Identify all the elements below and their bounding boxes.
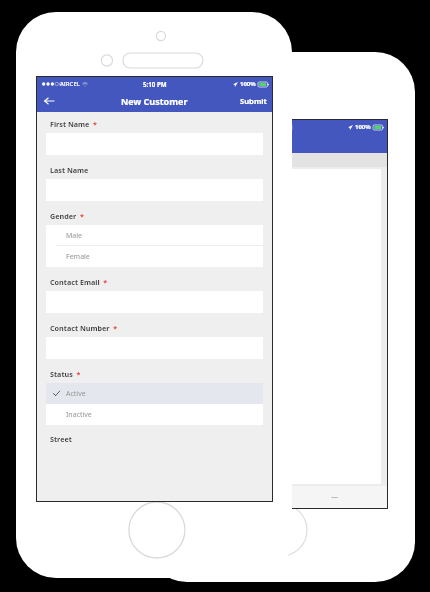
- staticText: 100%: [240, 80, 256, 88]
- staticText: 5:10 PM: [269, 123, 293, 131]
- staticText: Female: [66, 252, 90, 262]
- staticText: 5:10 PM: [143, 80, 167, 88]
- staticText: Street: [50, 434, 72, 444]
- button[interactable]: Female: [46, 246, 263, 267]
- staticText: Inactive: [66, 410, 92, 420]
- button[interactable]: —: [281, 486, 387, 508]
- staticText: First Name *: [50, 119, 97, 129]
- staticText: 100%: [355, 123, 371, 131]
- staticText: Submit: [240, 96, 267, 106]
- button[interactable]: Submit: [235, 92, 272, 110]
- staticText: Delete: [216, 492, 239, 502]
- staticText: Contact Email *: [50, 277, 108, 287]
- staticText: —: [331, 492, 338, 502]
- staticText: New Customer: [121, 95, 188, 107]
- staticText: Active: [66, 389, 86, 399]
- button[interactable]: Inactive: [46, 404, 263, 425]
- staticText: California: [189, 379, 221, 389]
- staticText: Gender *: [50, 211, 84, 221]
- button[interactable]: Male: [46, 225, 263, 246]
- button[interactable]: Back: [41, 93, 57, 109]
- staticText: Pleasanton: [189, 355, 226, 365]
- staticText: Male: [66, 231, 83, 241]
- staticText: AIRCEL: [60, 80, 80, 88]
- button[interactable]: Delete: [175, 486, 280, 508]
- staticText: Status *: [50, 369, 81, 379]
- staticText: 4900 Hacienda Drive: [189, 331, 257, 341]
- button[interactable]: Active: [46, 383, 263, 404]
- staticText: Last Name: [50, 165, 89, 175]
- staticText: Contact Number *: [50, 323, 118, 333]
